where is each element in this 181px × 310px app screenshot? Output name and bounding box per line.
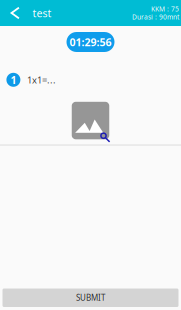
staticText: Durasi : 90mnt bbox=[132, 13, 179, 21]
button[interactable]: View image bbox=[72, 102, 109, 139]
staticText: KKM : 75 bbox=[151, 5, 179, 13]
staticText: 1 bbox=[10, 73, 16, 87]
button[interactable]: SUBMIT bbox=[2, 288, 178, 307]
staticText: SUBMIT bbox=[76, 292, 105, 303]
staticText: test bbox=[33, 6, 52, 20]
staticText: 1x1=... bbox=[27, 74, 56, 86]
button[interactable]: Back bbox=[0, 0, 58, 26]
staticText: 01:29:56 bbox=[69, 35, 111, 49]
